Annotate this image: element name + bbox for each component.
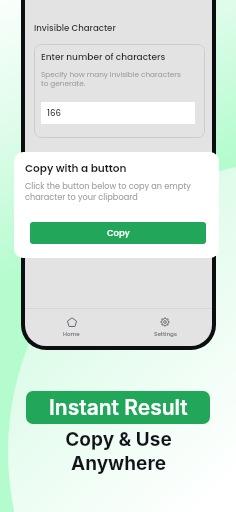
staticText: Copy [107,227,130,239]
button[interactable]: 166 [41,102,195,124]
staticText: Settings [154,330,177,338]
staticText: Click the button below to copy an empty … [25,180,191,203]
staticText: Invisible Character [34,22,116,34]
staticText: 166 [47,107,62,119]
staticText: Copy & Use Anywhere [65,428,172,475]
button[interactable]: Copy [30,222,206,244]
staticText: Instant Result [49,395,188,420]
staticText: Home [63,330,80,338]
other: Home [67,317,77,327]
staticText: Specify how many invisible characters to… [41,69,181,89]
button[interactable]: Settings [118,309,212,346]
staticText: Enter number of characters [41,51,166,64]
button[interactable]: Home [25,309,118,346]
other: Settings [160,317,170,327]
staticText: Copy with a button [25,161,127,176]
